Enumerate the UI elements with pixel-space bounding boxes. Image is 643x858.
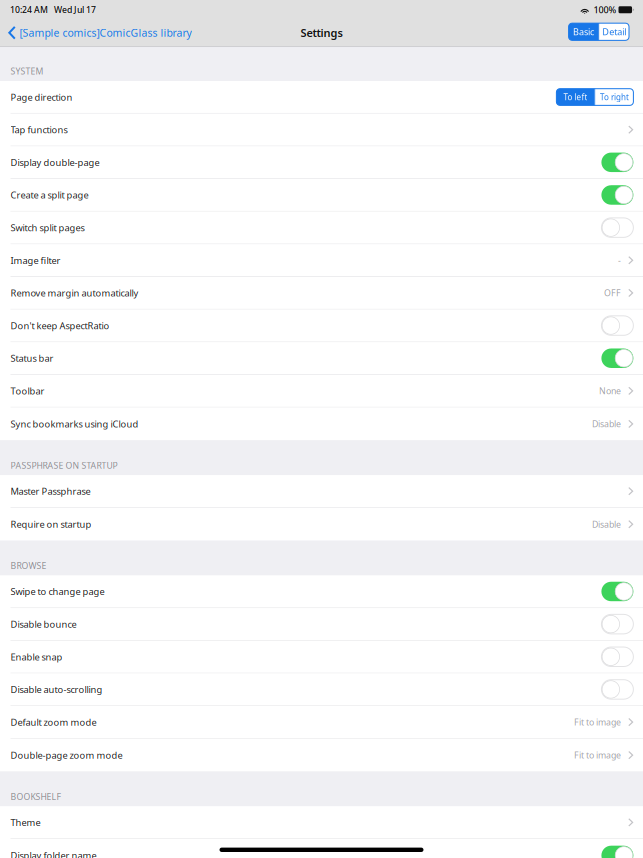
staticText: Toolbar xyxy=(10,384,44,397)
button[interactable]: Tap functions xyxy=(0,114,643,146)
button[interactable]: Don't keep AspectRatio xyxy=(0,310,643,342)
staticText: To right xyxy=(600,92,629,102)
staticText: BROWSE xyxy=(10,560,46,571)
staticText: Status bar xyxy=(10,352,53,365)
staticText: Sync bookmarks using iCloud xyxy=(10,418,138,430)
staticText: Fit to image xyxy=(574,749,621,761)
button[interactable]: Remove margin automatically xyxy=(0,277,643,310)
staticText: - xyxy=(618,254,621,266)
button[interactable]: Double-page zoom mode xyxy=(0,739,643,771)
button[interactable]: Enable snap xyxy=(0,641,643,673)
button[interactable]: Display double-page xyxy=(0,146,643,179)
button[interactable]: Detail xyxy=(599,23,629,40)
staticText: OFF xyxy=(604,287,621,299)
button[interactable]: Basic xyxy=(569,23,598,40)
button[interactable]: Page direction xyxy=(0,81,643,114)
staticText: Display folder name xyxy=(10,849,96,858)
staticText: Settings xyxy=(300,25,342,40)
button[interactable]: To left xyxy=(556,89,594,105)
staticText: Page direction xyxy=(10,91,72,103)
button[interactable]: Disable auto-scrolling xyxy=(0,673,643,706)
staticText: [Sample comics]ComicGlass library xyxy=(19,26,191,40)
staticText: Enable snap xyxy=(10,650,62,663)
button[interactable]: Theme xyxy=(0,806,643,839)
button[interactable]: Toolbar xyxy=(0,375,643,407)
button[interactable]: Sync bookmarks using iCloud xyxy=(0,408,643,440)
button[interactable]: Status bar xyxy=(0,342,643,375)
staticText: Display double-page xyxy=(10,156,99,169)
staticText: Disable xyxy=(592,418,621,430)
staticText: Wed Jul 17 xyxy=(48,4,96,16)
staticText: 100% xyxy=(589,4,618,16)
staticText: Disable auto-scrolling xyxy=(10,683,102,696)
staticText: Disable xyxy=(592,518,621,530)
staticText: Basic xyxy=(573,26,594,38)
staticText: Fit to image xyxy=(574,716,621,728)
button[interactable]: Switch split pages xyxy=(0,212,643,244)
button[interactable]: Display folder name xyxy=(0,839,643,858)
button[interactable]: Require on startup xyxy=(0,508,643,540)
staticText: BOOKSHELF xyxy=(10,791,60,802)
staticText: To left xyxy=(563,92,587,102)
staticText: Require on startup xyxy=(10,518,91,531)
staticText: Master Passphrase xyxy=(10,485,90,497)
button[interactable]: Default zoom mode xyxy=(0,706,643,739)
staticText: Double-page zoom mode xyxy=(10,749,122,761)
staticText: Default zoom mode xyxy=(10,716,96,728)
staticText: Swipe to change page xyxy=(10,585,104,598)
button[interactable]: Image filter xyxy=(0,244,643,277)
button[interactable]: Disable bounce xyxy=(0,608,643,641)
staticText: Detail xyxy=(602,26,626,38)
staticText: None xyxy=(599,385,621,397)
staticText: 10:24 AM xyxy=(10,4,48,16)
button[interactable]: Create a split page xyxy=(0,179,643,212)
staticText: Tap functions xyxy=(10,123,67,136)
staticText: Disable bounce xyxy=(10,618,76,630)
staticText: Create a split page xyxy=(10,189,88,201)
staticText: PASSPHRASE ON STARTUP xyxy=(10,459,117,471)
staticText: Theme xyxy=(10,816,40,829)
button[interactable]: To right xyxy=(595,89,633,105)
staticText: SYSTEM xyxy=(10,65,43,77)
button[interactable]: Basic xyxy=(569,20,643,46)
staticText: Image filter xyxy=(10,254,60,267)
staticText: Don't keep AspectRatio xyxy=(10,319,109,332)
button[interactable]: [Sample comics]ComicGlass library xyxy=(0,20,191,45)
button[interactable]: Master Passphrase xyxy=(0,475,643,508)
button[interactable]: Swipe to change page xyxy=(0,575,643,608)
staticText: Switch split pages xyxy=(10,221,84,234)
staticText: Remove margin automatically xyxy=(10,287,138,299)
